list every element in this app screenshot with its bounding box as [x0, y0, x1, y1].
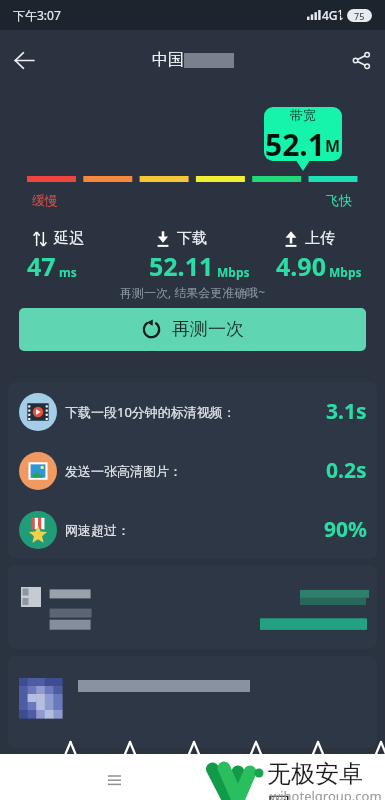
staticText: 无极安卓网 [267, 759, 385, 800]
button[interactable]: 网速超过： [8, 500, 377, 559]
staticText: 上传 [305, 229, 335, 248]
staticText: 52.11 [149, 249, 214, 283]
button[interactable]: Share [337, 36, 385, 84]
staticText: 4G [322, 7, 338, 23]
staticText: 延迟 [54, 229, 84, 248]
staticText: 网速超过： [65, 522, 130, 538]
staticText: 带宽 [290, 107, 316, 123]
button[interactable]: 再测一次 [19, 308, 366, 351]
staticText: M [325, 135, 341, 157]
staticText: 75 [354, 10, 365, 22]
staticText: 52.1 [265, 124, 325, 160]
staticText: 飞快 [326, 192, 352, 208]
button[interactable]: Menu [96, 762, 132, 798]
staticText: wjhotelgroup.com [270, 787, 382, 800]
staticText: 发送一张高清图片： [65, 463, 182, 479]
staticText: 3.1s [326, 397, 367, 426]
button[interactable]: 发送一张高清图片： [8, 441, 377, 500]
staticText: Mbps [329, 264, 362, 280]
button[interactable] [8, 656, 377, 748]
staticText: 4.90 [276, 249, 326, 283]
staticText: 中国 [152, 50, 184, 70]
staticText: 下载一段10分钟的标清视频： [65, 403, 236, 421]
button[interactable]: 下载一段10分钟的标清视频： [8, 382, 377, 441]
staticText: 0.2s [326, 456, 367, 485]
staticText: ms [59, 264, 77, 280]
button[interactable] [8, 565, 377, 649]
staticText: 90% [324, 515, 367, 544]
staticText: 下载 [177, 229, 207, 248]
staticText: 再测一次, 结果会更准确哦~ [0, 284, 385, 300]
staticText: 再测一次 [172, 318, 244, 341]
staticText: 下午3:07 [13, 7, 61, 23]
staticText: 47 [27, 249, 56, 283]
staticText: 缓慢 [32, 192, 58, 208]
staticText: Mbps [217, 264, 250, 280]
button[interactable]: Back [0, 36, 48, 84]
